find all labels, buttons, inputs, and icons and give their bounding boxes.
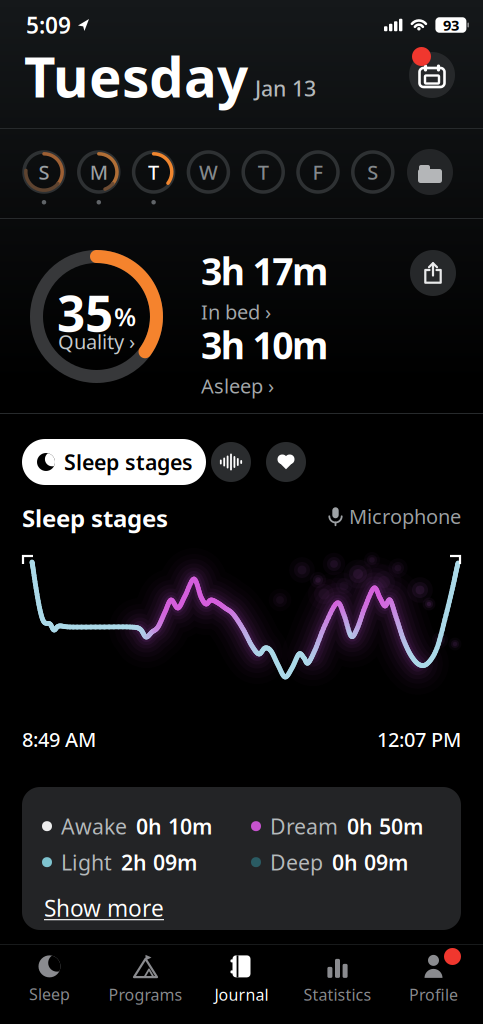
staticText: 0h 50m [347, 812, 423, 840]
staticText: T [148, 159, 159, 185]
staticText: Profile [409, 984, 458, 1005]
staticText: M [90, 159, 108, 185]
button[interactable]: Microphone [281, 503, 461, 530]
button[interactable]: T [243, 152, 283, 192]
staticText: 8:49 AM [22, 726, 96, 753]
staticText: Sleep stages [22, 502, 168, 534]
button[interactable]: Statistics [289, 951, 385, 1009]
staticText: Asleep › [201, 373, 274, 399]
staticText: S [367, 159, 378, 185]
staticText: Awake [61, 812, 127, 840]
staticText: Deep [270, 848, 323, 876]
staticText: Sleep [29, 983, 70, 1005]
button[interactable]: F [298, 152, 338, 192]
staticText: 3h 10m [201, 320, 328, 370]
staticText: T [258, 159, 269, 185]
staticText: Quality › [58, 328, 135, 355]
button[interactable]: Sleep stages [22, 439, 206, 485]
staticText: 12:07 PM [377, 726, 461, 753]
button[interactable]: Share [410, 250, 456, 296]
staticText: 2h 09m [121, 848, 197, 876]
button[interactable]: Sleep quality 35% [30, 250, 163, 383]
staticText: 0h 09m [332, 848, 408, 876]
staticText: 93 [443, 15, 459, 35]
button[interactable]: Journal [193, 951, 289, 1009]
staticText: W [199, 159, 218, 185]
button[interactable]: W [188, 152, 228, 192]
staticText: Programs [108, 984, 182, 1005]
button[interactable]: Heart rate [266, 442, 306, 482]
button[interactable]: M [79, 152, 119, 192]
staticText: % [114, 300, 136, 333]
button[interactable]: Sleep [1, 951, 97, 1009]
staticText: 3h 17m [201, 246, 328, 296]
staticText: Journal [214, 984, 268, 1005]
button[interactable]: S [24, 152, 64, 192]
staticText: 35 [57, 280, 113, 345]
staticText: F [312, 159, 323, 185]
button[interactable]: Programs [97, 951, 193, 1009]
staticText: Tuesday [24, 40, 248, 113]
button[interactable]: T [134, 152, 174, 192]
staticText: In bed › [201, 299, 271, 325]
staticText: Sleep stages [64, 448, 193, 476]
staticText: Jan 13 [255, 74, 316, 102]
button[interactable]: In bed 3h 17m [201, 246, 328, 325]
staticText: Statistics [303, 984, 371, 1005]
staticText: Show more [44, 893, 164, 923]
button[interactable]: Calendar [409, 52, 455, 98]
staticText: Dream [270, 812, 338, 840]
button[interactable]: Profile [385, 951, 481, 1009]
button[interactable]: S [353, 152, 393, 192]
button[interactable]: Archive [407, 149, 453, 195]
staticText: Light [61, 848, 112, 876]
button[interactable]: Asleep 3h 10m [201, 320, 328, 399]
button[interactable]: Show more [44, 893, 164, 923]
button[interactable]: Sounds [211, 442, 251, 482]
staticText: 5:09 [26, 10, 71, 40]
staticText: 0h 10m [136, 812, 212, 840]
staticText: Microphone [349, 503, 461, 530]
staticText: S [38, 159, 49, 185]
